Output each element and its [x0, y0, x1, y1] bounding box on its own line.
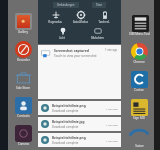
button[interactable]: Sale Store [14, 68, 32, 93]
staticText: Contacts [17, 114, 30, 118]
staticText: Beispielrichtlinie.png [52, 136, 86, 140]
button[interactable]: Chrome [130, 42, 148, 67]
button[interactable]: Licht [51, 26, 73, 40]
staticText: Sign MD [133, 116, 145, 120]
staticText: Taschenl. [98, 20, 110, 24]
staticText: Beispielrichtlinie.png [52, 104, 86, 108]
button[interactable]: Sign MD [130, 98, 148, 123]
staticText: Auto-Modus [73, 20, 88, 24]
button[interactable]: Camera [14, 124, 32, 147]
button[interactable]: Auto-Modus [69, 10, 91, 24]
staticText: Download complete [52, 141, 79, 145]
staticText: Recorder [17, 58, 30, 62]
button[interactable]: Beispielrichtlinie.png [41, 101, 118, 115]
button[interactable]: Gallery [14, 12, 32, 37]
button[interactable]: SIM Menu Tool [129, 14, 150, 39]
staticText: Swipe [135, 144, 144, 147]
staticText: 1 min ago [106, 123, 118, 126]
button[interactable]: Beispielrichtlinie.png [41, 133, 118, 147]
staticText: Download complete [52, 109, 79, 113]
button[interactable]: Töne [96, 3, 102, 7]
button[interactable]: Swipe [130, 126, 148, 147]
staticText: Sale Store [16, 86, 30, 90]
staticText: Licht [59, 36, 65, 40]
staticText: Camera [18, 142, 29, 146]
staticText: 1 min ago [106, 107, 118, 110]
staticText: Beispielrichtlinie.jpg [52, 120, 85, 124]
staticText: Gallery [18, 30, 28, 34]
staticText: Bildschirm [91, 36, 104, 40]
button[interactable]: Cortex [130, 70, 148, 95]
staticText: Download complete [52, 125, 79, 129]
button[interactable]: Contacts [14, 96, 32, 121]
staticText: Töne [96, 3, 102, 7]
staticText: SIM Menu Tool [129, 32, 150, 36]
button[interactable]: Flugmodus [44, 10, 66, 24]
staticText: Screenshot captured [54, 48, 89, 53]
staticText: Touch to view your screenshot [54, 54, 97, 58]
button[interactable]: Beispielrichtlinie.jpg [41, 117, 118, 131]
button[interactable]: Screenshot captured [38, 45, 121, 99]
button[interactable]: Verbindungen [57, 3, 75, 7]
button[interactable]: Recorder [14, 40, 32, 65]
staticText: 1 min ago [105, 48, 118, 52]
staticText: Flugmodus [48, 20, 62, 24]
button[interactable]: Bildschirm [86, 26, 108, 40]
staticText: 1 min ago [106, 139, 118, 142]
staticText: Chrome [133, 60, 145, 64]
button[interactable]: Taschenl. [93, 10, 115, 24]
staticText: Verbindungen [57, 3, 75, 7]
staticText: Cortex [134, 88, 144, 92]
